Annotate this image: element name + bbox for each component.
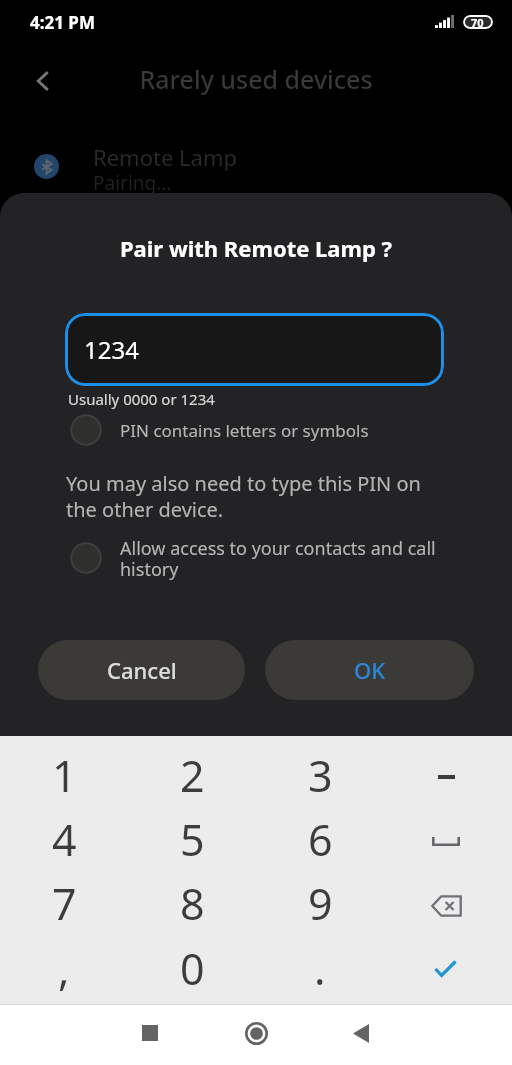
staticText: 7 [52, 874, 77, 933]
button[interactable]: Recent apps [120, 1003, 180, 1063]
button[interactable]: 3 [256, 743, 384, 807]
button[interactable]: check [384, 936, 512, 1001]
button[interactable]: , [0, 936, 128, 1001]
staticText: 2 [180, 746, 205, 805]
button[interactable]: 2 [128, 743, 256, 807]
button[interactable]: 0 [128, 936, 256, 1001]
staticText: 70 [471, 15, 484, 29]
button[interactable]: 8 [128, 871, 256, 936]
staticText: Remote Lamp [93, 142, 238, 172]
button[interactable]: 1234 [65, 313, 444, 386]
button[interactable]: Navigate up [21, 59, 65, 103]
staticText: 3 [308, 746, 333, 805]
button[interactable]: PIN contains letters or symbols [0, 408, 512, 452]
staticText: Pair with Remote Lamp ? [0, 233, 512, 263]
button[interactable]: . [256, 936, 384, 1001]
staticText: 9 [308, 874, 333, 933]
staticText: 6 [308, 810, 333, 869]
staticText: 5 [180, 810, 205, 869]
button[interactable]: Allow access to your contacts and call h… [0, 536, 512, 580]
button[interactable]: 4 [0, 807, 128, 871]
button[interactable]: space [384, 807, 512, 871]
button[interactable]: 9 [256, 871, 384, 936]
staticText: Allow access to your contacts and call h… [120, 536, 470, 580]
staticText: OK [354, 655, 386, 685]
button[interactable]: Cancel [38, 640, 245, 700]
staticText: 4:21 PM [30, 11, 95, 34]
button[interactable]: Home [226, 1003, 286, 1063]
staticText: Pairing… [93, 170, 172, 196]
button[interactable]: dash [384, 743, 512, 807]
staticText: Usually 0000 or 1234 [68, 389, 215, 409]
button[interactable]: 6 [256, 807, 384, 871]
staticText: . [314, 939, 326, 998]
staticText: 4 [52, 810, 77, 869]
staticText: 1234 [84, 333, 139, 366]
staticText: PIN contains letters or symbols [120, 419, 369, 442]
staticText: Rarely used devices [0, 62, 512, 96]
staticText: 8 [180, 874, 205, 933]
button[interactable]: 1 [0, 743, 128, 807]
button[interactable]: 7 [0, 871, 128, 936]
staticText: Cancel [107, 655, 177, 685]
button[interactable]: back [384, 871, 512, 936]
staticText: , [58, 939, 70, 998]
button[interactable]: 5 [128, 807, 256, 871]
button[interactable]: Back [331, 1003, 391, 1063]
staticText: 0 [180, 939, 205, 998]
staticText: 1 [52, 746, 77, 805]
staticText: You may also need to type this PIN on th… [66, 470, 421, 523]
button[interactable]: OK [265, 640, 474, 700]
